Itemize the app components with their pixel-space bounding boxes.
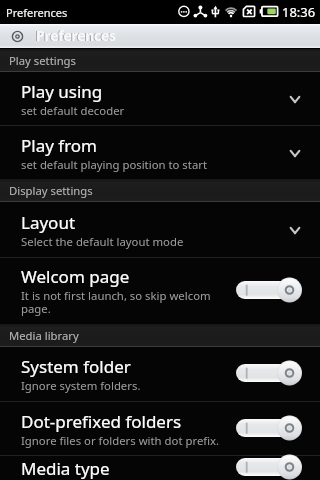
button[interactable]: Media type: [0, 456, 320, 480]
button[interactable]: Toggle: [236, 356, 320, 390]
staticText: Preferences: [35, 27, 115, 45]
staticText: Dot-prefixed folders: [21, 410, 182, 433]
staticText: Play using: [21, 80, 103, 103]
staticText: It is not first launch, so skip welcom p…: [21, 288, 229, 317]
staticText: System folder: [21, 355, 131, 378]
staticText: Layout: [21, 211, 76, 234]
button[interactable]: Play from: [0, 126, 320, 179]
other: Expand: [270, 72, 320, 125]
button[interactable]: Play using: [0, 72, 320, 125]
button[interactable]: Layout: [0, 202, 320, 257]
button[interactable]: Toggle: [236, 273, 320, 307]
staticText: Play from: [21, 134, 98, 157]
button[interactable]: Dot-prefixed folders: [0, 402, 320, 455]
other: Expand: [270, 202, 320, 257]
staticText: Preferences: [36, 27, 116, 45]
staticText: Play settings: [9, 53, 76, 68]
staticText: Ignore files or folders with dot prefix.: [21, 433, 220, 448]
other: Expand: [270, 126, 320, 179]
staticText: 18:36: [282, 3, 316, 21]
staticText: Preferences: [6, 5, 68, 20]
staticText: set default playing position to start: [21, 157, 208, 172]
staticText: Ignore system folders.: [21, 378, 141, 393]
staticText: Media type: [21, 457, 110, 480]
button[interactable]: Welcom page: [0, 258, 320, 324]
staticText: Media library: [9, 328, 79, 343]
staticText: Display settings: [9, 183, 93, 198]
staticText: Select the default layout mode: [21, 234, 184, 249]
button[interactable]: System folder: [0, 347, 320, 401]
staticText: Welcom page: [21, 265, 130, 288]
other: Preferences: [11, 30, 24, 43]
button[interactable]: Toggle: [236, 455, 320, 479]
staticText: set default decoder: [21, 103, 125, 118]
button[interactable]: Toggle: [236, 411, 320, 445]
